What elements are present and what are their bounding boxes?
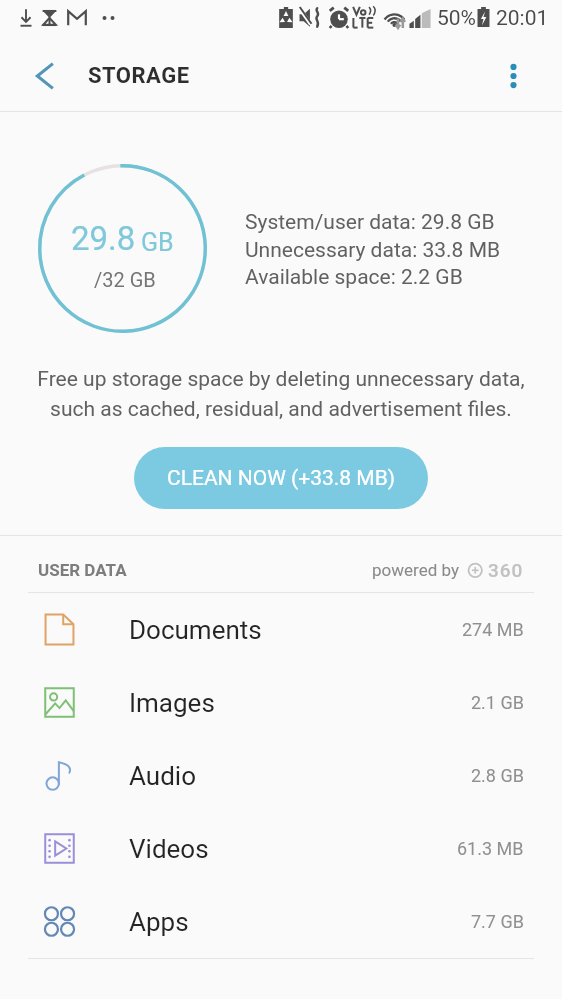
button[interactable]: Documents: [0, 593, 562, 666]
staticText: USER DATA: [38, 560, 127, 580]
button[interactable]: CLEAN NOW (+33.8 MB): [134, 447, 428, 509]
button[interactable]: Images: [0, 666, 562, 739]
staticText: Documents: [129, 615, 262, 645]
button[interactable]: Videos: [0, 812, 562, 885]
button[interactable]: Back: [20, 52, 68, 100]
staticText: 29.8: [71, 219, 136, 258]
staticText: 2.8 GB: [471, 765, 524, 786]
staticText: System/user data: 29.8 GB Unnecessary da…: [245, 210, 501, 289]
staticText: powered by: [372, 560, 459, 580]
staticText: Apps: [129, 907, 189, 937]
staticText: Free up storage space by deleting unnece…: [0, 367, 562, 421]
staticText: /32 GB: [94, 268, 156, 291]
staticText: 360: [488, 559, 524, 581]
staticText: Audio: [129, 761, 196, 791]
button[interactable]: More options: [493, 56, 533, 96]
button[interactable]: Audio: [0, 739, 562, 812]
staticText: 20:01: [496, 6, 549, 31]
staticText: CLEAN NOW (+33.8 MB): [167, 466, 396, 491]
staticText: GB: [141, 228, 174, 257]
button[interactable]: Apps: [0, 885, 562, 958]
staticText: Videos: [129, 834, 209, 864]
staticText: 7.7 GB: [471, 911, 524, 932]
staticText: 2.1 GB: [471, 692, 524, 713]
staticText: 50%: [437, 6, 476, 31]
staticText: 61.3 MB: [457, 838, 524, 859]
staticText: 274 MB: [462, 619, 524, 640]
staticText: Images: [129, 688, 215, 718]
staticText: STORAGE: [88, 63, 190, 89]
